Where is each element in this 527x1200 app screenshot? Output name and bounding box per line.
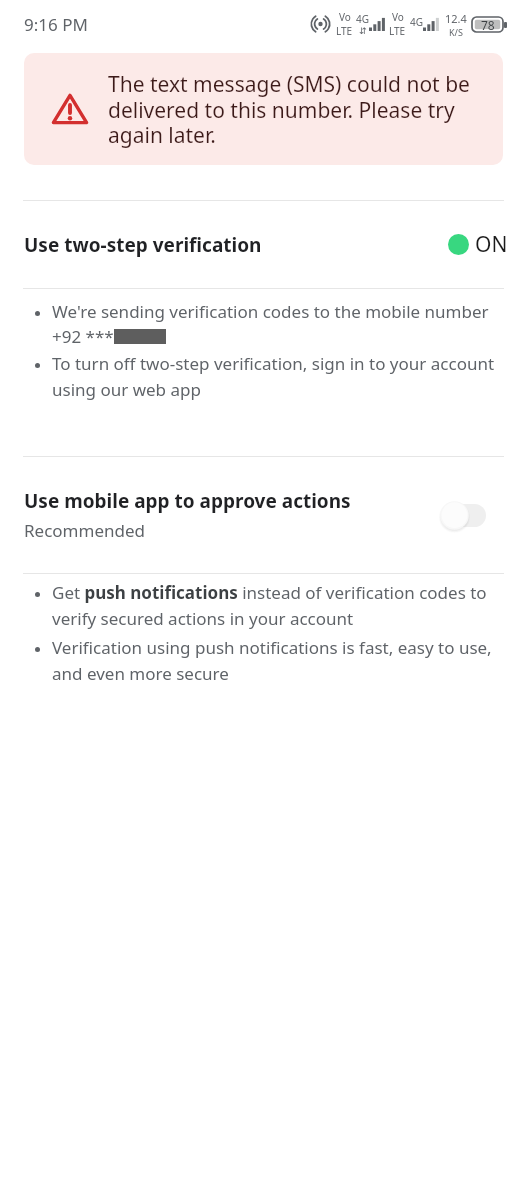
staticText: LTE	[389, 24, 406, 38]
button[interactable]: Toggle mobile app approvals	[439, 500, 486, 531]
staticText: K/S	[449, 26, 463, 38]
button[interactable]: Use mobile app to approve actions	[0, 457, 527, 573]
staticText: 78	[481, 17, 495, 32]
button[interactable]: The text message (SMS) could not be deli…	[24, 53, 503, 165]
staticText: Verification using push notifications is…	[52, 636, 502, 685]
staticText: Vo	[339, 10, 351, 24]
staticText: To turn off two-step verification, sign …	[52, 352, 502, 401]
staticText: The text message (SMS) could not be deli…	[108, 70, 487, 149]
staticText: Vo	[392, 10, 404, 24]
staticText: ON	[475, 230, 508, 259]
button[interactable]: Use two-step verification	[0, 201, 527, 288]
staticText: 4G	[410, 15, 423, 29]
staticText: 4G	[356, 12, 369, 26]
staticText: Use two-step verification	[24, 232, 262, 258]
staticText: +92 ****	[52, 325, 124, 348]
staticText: LTE	[336, 24, 353, 38]
staticText: Recommended	[24, 519, 145, 542]
staticText: We're sending verification codes to the …	[52, 300, 489, 323]
staticText: ⇵	[359, 26, 367, 36]
staticText: Get push notifications instead of verifi…	[52, 581, 502, 630]
staticText: Use mobile app to approve actions	[24, 488, 351, 514]
staticText: 9:16 PM	[24, 13, 88, 36]
staticText: 12.4	[445, 11, 467, 26]
